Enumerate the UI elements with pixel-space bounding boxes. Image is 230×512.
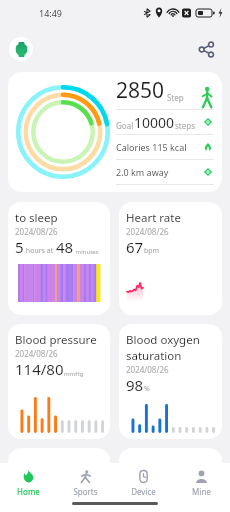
button[interactable]: Share bbox=[193, 36, 219, 62]
staticText: 48 bbox=[56, 237, 74, 257]
staticText: 2024/08/26 bbox=[126, 364, 169, 375]
staticText: Sports bbox=[73, 486, 98, 497]
staticText: 10000 bbox=[134, 113, 175, 132]
button[interactable]: Blood pressure bbox=[8, 324, 110, 439]
button[interactable]: Device bbox=[9, 37, 33, 61]
staticText: mmHg bbox=[64, 370, 84, 378]
staticText: Calories 115 kcal bbox=[116, 141, 187, 153]
staticText: hours at bbox=[24, 246, 56, 256]
staticText: 2.0 km away bbox=[116, 166, 169, 178]
button[interactable]: 2850 bbox=[8, 72, 222, 192]
staticText: Heart rate bbox=[126, 210, 181, 226]
staticText: 5 bbox=[15, 237, 24, 257]
staticText: 98 bbox=[126, 375, 144, 395]
staticText: 2024/08/26 bbox=[15, 226, 58, 237]
staticText: Mine bbox=[192, 486, 211, 497]
staticText: Step bbox=[165, 92, 184, 103]
staticText: bpm bbox=[144, 246, 160, 256]
button[interactable]: Mine bbox=[172, 463, 230, 500]
staticText: steps bbox=[175, 120, 195, 131]
staticText: saturation bbox=[126, 348, 182, 364]
button[interactable]: Home bbox=[0, 463, 57, 500]
staticText: Blood oxygen bbox=[126, 332, 200, 348]
button[interactable]: Blood oxygen bbox=[119, 324, 222, 439]
staticText: 14:49 bbox=[39, 7, 63, 19]
staticText: 2850 bbox=[116, 76, 165, 105]
button[interactable]: Heart rate bbox=[119, 202, 222, 315]
staticText: 2024/08/26 bbox=[126, 226, 169, 237]
staticText: Goal bbox=[116, 120, 134, 131]
staticText: Device bbox=[131, 486, 156, 497]
staticText: 114/80 bbox=[15, 359, 64, 379]
staticText: Blood pressure bbox=[15, 332, 97, 348]
staticText: 2024/08/26 bbox=[15, 348, 58, 359]
staticText: % bbox=[144, 384, 150, 394]
staticText: to sleep bbox=[15, 210, 58, 226]
button[interactable]: to sleep bbox=[8, 202, 110, 315]
staticText: minutes bbox=[74, 248, 99, 256]
button[interactable]: Sports bbox=[57, 463, 114, 500]
staticText: 67 bbox=[126, 237, 144, 257]
staticText: Home bbox=[17, 486, 40, 497]
button[interactable]: Device bbox=[114, 463, 172, 500]
